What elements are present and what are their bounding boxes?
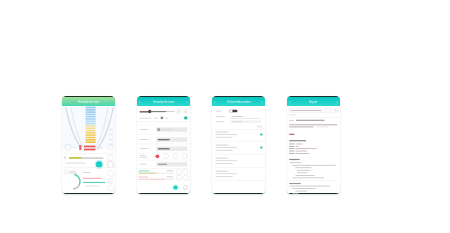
button[interactable]: Back: [288, 100, 292, 104]
button[interactable]: Periodontal chart: [137, 97, 190, 106]
button[interactable]: More options: [335, 100, 339, 104]
button[interactable]: Save: [173, 185, 178, 190]
staticText: Report: [309, 100, 318, 104]
button[interactable]: Add: [183, 185, 188, 190]
staticText: Periodontal chart: [153, 100, 175, 104]
button[interactable]: Back: [213, 100, 217, 104]
button[interactable]: Back: [138, 100, 142, 104]
staticText: Patient information: [227, 100, 251, 104]
button[interactable]: More options: [260, 100, 264, 104]
button[interactable]: Patient information: [212, 97, 265, 106]
button[interactable]: Report: [287, 97, 340, 106]
button[interactable]: Periodontal chart: [62, 97, 115, 106]
button[interactable]: More options: [185, 100, 189, 104]
staticText: Periodontal chart: [78, 100, 100, 104]
